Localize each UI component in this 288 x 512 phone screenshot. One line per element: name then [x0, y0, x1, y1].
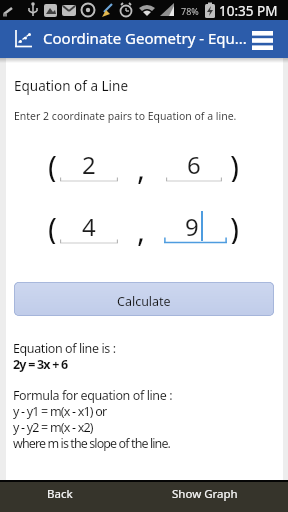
- staticText: Calculate: [117, 293, 171, 310]
- staticText: 10:35 PM: [219, 2, 278, 20]
- staticText: Formula for equation of line :: [13, 387, 173, 404]
- button[interactable]: Calculate: [14, 282, 274, 316]
- staticText: ): [230, 208, 239, 244]
- staticText: Equation of a Line: [14, 77, 129, 95]
- button[interactable]: Back: [30, 480, 90, 512]
- staticText: y - y2 = m(x - x2): [13, 419, 93, 436]
- button[interactable]: 4: [60, 209, 118, 243]
- staticText: 4: [82, 210, 96, 243]
- staticText: where m is the slope of the line.: [13, 435, 171, 452]
- staticText: ,: [137, 148, 146, 184]
- button[interactable]: 9: [166, 209, 222, 243]
- button[interactable]: [246, 25, 280, 55]
- staticText: Coordinate Geometry - Equ...: [43, 28, 247, 48]
- staticText: 78%: [181, 5, 199, 17]
- staticText: Enter 2 coordinate pairs to Equation of …: [14, 109, 237, 123]
- button[interactable]: 6: [166, 147, 222, 181]
- staticText: Show Graph: [172, 486, 238, 502]
- staticText: y - y1 = m(x - x1) or: [13, 403, 107, 420]
- button[interactable]: Show Graph: [160, 480, 250, 512]
- button[interactable]: 2: [60, 147, 118, 181]
- staticText: 2: [82, 148, 96, 181]
- staticText: Back: [47, 486, 73, 502]
- staticText: (: [48, 208, 57, 244]
- staticText: 2y = 3x + 6: [13, 356, 68, 373]
- staticText: ,: [137, 210, 146, 246]
- staticText: Equation of line is :: [13, 340, 116, 357]
- staticText: ): [230, 146, 239, 182]
- staticText: 9: [185, 210, 199, 243]
- staticText: (: [48, 146, 57, 182]
- staticText: 6: [187, 148, 201, 181]
